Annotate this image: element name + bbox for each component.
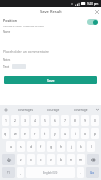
- staticText: ,: [20, 170, 21, 175]
- button[interactable]: Name: [0, 28, 101, 42]
- button[interactable]: 8: [71, 115, 79, 126]
- staticText: k: [80, 144, 82, 149]
- staticText: e: [24, 131, 26, 136]
- button[interactable]: Toggle position: [87, 19, 98, 25]
- button[interactable]: 3: [21, 115, 29, 126]
- staticText: i: [75, 131, 76, 136]
- button[interactable]: d: [27, 141, 35, 152]
- button[interactable]: f: [37, 141, 45, 152]
- staticText: c: [40, 157, 42, 162]
- staticText: v: [50, 157, 52, 162]
- button[interactable]: Position: [0, 16, 101, 28]
- button[interactable]: a: [6, 141, 15, 152]
- button[interactable]: p: [91, 128, 99, 139]
- staticText: 5: [44, 118, 46, 123]
- button[interactable]: Save: [4, 76, 97, 84]
- staticText: Go: [90, 171, 95, 175]
- button[interactable]: 9: [81, 115, 89, 126]
- button[interactable]: g: [47, 141, 55, 152]
- button[interactable]: m: [77, 154, 85, 165]
- button[interactable]: 4: [31, 115, 39, 126]
- button[interactable]: coverage: [67, 105, 94, 114]
- button[interactable]: Close: [93, 8, 101, 16]
- button[interactable]: 5: [41, 115, 49, 126]
- staticText: 8: [74, 118, 76, 123]
- staticText: Text: [3, 65, 10, 69]
- button[interactable]: Placeholder un commentaire: [0, 42, 101, 56]
- button[interactable]: k: [77, 141, 85, 152]
- staticText: 1: [5, 118, 7, 123]
- button[interactable]: y: [51, 128, 59, 139]
- staticText: d: [30, 144, 33, 149]
- button[interactable]: English (US): [26, 167, 75, 178]
- staticText: 0: [94, 118, 96, 123]
- button[interactable]: Shift: [2, 154, 15, 165]
- staticText: x: [30, 157, 32, 162]
- staticText: 2: [14, 118, 16, 123]
- button[interactable]: i: [71, 128, 79, 139]
- button[interactable]: h: [57, 141, 65, 152]
- staticText: coverages: [18, 108, 34, 112]
- button[interactable]: t: [41, 128, 49, 139]
- staticText: j: [71, 144, 72, 149]
- staticText: l: [91, 144, 92, 149]
- staticText: ?1: [7, 171, 10, 175]
- button[interactable]: s: [17, 141, 25, 152]
- staticText: o: [84, 131, 87, 136]
- button[interactable]: o: [81, 128, 89, 139]
- button[interactable]: 6: [51, 115, 59, 126]
- button[interactable]: 2: [11, 115, 19, 126]
- button[interactable]: c: [37, 154, 45, 165]
- button[interactable]: v: [47, 154, 55, 165]
- staticText: f: [40, 144, 42, 149]
- button[interactable]: courage: [40, 105, 67, 114]
- button[interactable]: b: [57, 154, 65, 165]
- staticText: s: [20, 144, 22, 149]
- staticText: a: [10, 144, 12, 149]
- button[interactable]: ,: [17, 167, 24, 178]
- staticText: 3: [24, 118, 26, 123]
- button[interactable]: j: [67, 141, 75, 152]
- button[interactable]: r: [31, 128, 39, 139]
- staticText: t: [44, 131, 46, 136]
- button[interactable]: q: [2, 128, 9, 139]
- staticText: r: [34, 131, 36, 136]
- staticText: p: [94, 131, 97, 136]
- button[interactable]: 7: [61, 115, 69, 126]
- button[interactable]: Settings: [0, 105, 12, 114]
- staticText: y: [54, 131, 56, 136]
- staticText: q: [4, 131, 7, 136]
- staticText: .: [80, 170, 81, 175]
- staticText: Placeholder un commentaire: [3, 49, 50, 54]
- staticText: Notes: [3, 58, 11, 62]
- button[interactable]: e: [21, 128, 29, 139]
- button[interactable]: More suggestions: [94, 105, 101, 114]
- staticText: Latitude 37.0000 Longitude 95.0000: [3, 24, 44, 27]
- staticText: 9:20 pm: [87, 2, 99, 6]
- button[interactable]: 1: [2, 115, 9, 126]
- staticText: 7: [64, 118, 66, 123]
- staticText: 9: [84, 118, 86, 123]
- staticText: courage: [47, 108, 60, 112]
- staticText: m: [79, 157, 83, 162]
- button[interactable]: 0: [91, 115, 99, 126]
- staticText: n: [70, 157, 73, 162]
- button[interactable]: w: [11, 128, 19, 139]
- staticText: Save: [47, 78, 55, 83]
- staticText: g: [50, 144, 53, 149]
- button[interactable]: u: [61, 128, 69, 139]
- staticText: u: [64, 131, 67, 136]
- button[interactable]: l: [87, 141, 95, 152]
- staticText: English (US): [43, 171, 58, 175]
- button[interactable]: Go: [86, 167, 99, 178]
- button[interactable]: x: [27, 154, 35, 165]
- button[interactable]: ?1: [2, 167, 15, 178]
- button[interactable]: coverages: [12, 105, 40, 114]
- staticText: coverage: [74, 108, 88, 112]
- button[interactable]: Backspace: [87, 154, 99, 165]
- button[interactable]: z: [17, 154, 25, 165]
- button[interactable]: n: [67, 154, 75, 165]
- staticText: Save Result: [40, 9, 62, 14]
